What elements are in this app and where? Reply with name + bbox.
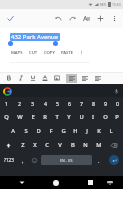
button[interactable]: Underline — [27, 72, 39, 84]
button[interactable]: J — [81, 124, 93, 138]
staticText: EN - US — [60, 158, 73, 163]
staticText: E — [31, 113, 35, 121]
button[interactable]: Align — [78, 73, 91, 84]
button[interactable]: Z — [17, 138, 29, 152]
staticText: T — [55, 113, 59, 121]
button[interactable]: Text color — [39, 72, 51, 84]
button[interactable]: R — [39, 110, 51, 124]
button[interactable]: L — [105, 124, 117, 138]
button[interactable]: 7 — [75, 97, 87, 110]
staticText: D — [36, 127, 41, 135]
button[interactable]: I — [87, 110, 99, 124]
staticText: 432 Park Avenue — [11, 33, 59, 41]
button[interactable]: Back — [12, 176, 31, 189]
button[interactable]: Google search — [3, 87, 11, 95]
staticText: 2 — [18, 100, 21, 107]
button[interactable]: F — [45, 124, 57, 138]
button[interactable]: Comma — [17, 152, 28, 168]
button[interactable]: B — [66, 138, 79, 152]
button[interactable]: Undo — [51, 9, 65, 28]
button[interactable]: X — [29, 138, 41, 152]
button[interactable]: ?123 — [0, 152, 17, 168]
button[interactable]: Add — [93, 9, 107, 28]
staticText: S — [24, 127, 28, 135]
button[interactable]: 2 — [13, 97, 26, 110]
button[interactable]: O — [99, 110, 111, 124]
button[interactable]: H — [69, 124, 81, 138]
button[interactable]: Italic — [15, 72, 27, 84]
button[interactable]: More options — [107, 9, 121, 28]
button[interactable]: 8 — [87, 97, 99, 110]
button[interactable]: K — [93, 124, 105, 138]
staticText: . — [98, 157, 100, 164]
staticText: W — [17, 113, 23, 121]
button[interactable]: Emoji — [28, 152, 40, 168]
button[interactable]: MAPS — [8, 47, 26, 58]
button[interactable]: 4 — [39, 97, 51, 110]
staticText: Q — [4, 113, 9, 121]
button[interactable]: Q — [0, 110, 13, 124]
button[interactable]: 1 — [0, 97, 13, 110]
button[interactable]: Align — [65, 73, 78, 84]
button[interactable]: M — [92, 138, 105, 152]
button[interactable]: Bold — [3, 72, 15, 84]
button[interactable]: CUT — [26, 47, 41, 58]
button[interactable]: Enter — [104, 152, 123, 168]
button[interactable]: U — [75, 110, 87, 124]
button[interactable]: Insert image — [51, 72, 63, 84]
staticText: 3 — [31, 100, 34, 107]
staticText: Z — [21, 141, 25, 149]
button[interactable]: Voice input — [112, 87, 120, 95]
button[interactable]: Home — [46, 176, 65, 189]
staticText: 4 — [44, 100, 47, 107]
button[interactable]: Y — [63, 110, 75, 124]
button[interactable]: 3 — [26, 97, 39, 110]
button[interactable]: E — [26, 110, 39, 124]
button[interactable]: S — [19, 124, 32, 138]
staticText: 15:53 — [112, 2, 121, 7]
staticText: ?123 — [4, 157, 14, 163]
staticText: PASTE — [61, 50, 74, 56]
button[interactable]: COPY — [41, 47, 58, 58]
button[interactable]: 5 — [51, 97, 63, 110]
button[interactable]: More — [77, 47, 85, 58]
button[interactable]: Shift — [0, 138, 17, 152]
button[interactable]: V — [53, 138, 66, 152]
button[interactable]: A — [6, 124, 19, 138]
staticText: 5 — [56, 100, 59, 107]
button[interactable]: PASTE — [58, 47, 77, 58]
staticText: MAPS — [11, 50, 23, 56]
button[interactable]: 0 — [111, 97, 123, 110]
button[interactable]: Format — [79, 9, 93, 28]
staticText: Y — [67, 113, 71, 121]
staticText: 1 — [5, 100, 8, 107]
button[interactable]: Backspace — [105, 138, 123, 152]
button[interactable]: T — [51, 110, 63, 124]
staticText: 6 — [68, 100, 71, 107]
button[interactable]: W — [13, 110, 26, 124]
staticText: J — [86, 127, 88, 135]
staticText: 8 — [92, 100, 95, 107]
button[interactable]: Redo — [65, 9, 79, 28]
button[interactable]: C — [41, 138, 53, 152]
staticText: X — [33, 141, 37, 149]
staticText: R — [43, 113, 47, 121]
staticText: A — [11, 127, 15, 135]
button[interactable]: 6 — [63, 97, 75, 110]
staticText: O — [103, 113, 108, 121]
button[interactable]: Period — [93, 152, 104, 168]
staticText: M — [96, 141, 102, 149]
staticText: G — [61, 127, 66, 135]
button[interactable]: Done — [4, 12, 17, 25]
staticText: K — [97, 127, 101, 135]
button[interactable]: Hide keyboard — [100, 176, 119, 189]
button[interactable]: G — [57, 124, 69, 138]
button[interactable]: Align — [91, 73, 104, 84]
button[interactable]: Recents — [81, 176, 100, 189]
staticText: 7 — [80, 100, 83, 107]
button[interactable]: N — [79, 138, 92, 152]
button[interactable]: P — [111, 110, 123, 124]
button[interactable]: Space — [41, 155, 92, 165]
button[interactable]: D — [32, 124, 45, 138]
button[interactable]: 9 — [99, 97, 111, 110]
